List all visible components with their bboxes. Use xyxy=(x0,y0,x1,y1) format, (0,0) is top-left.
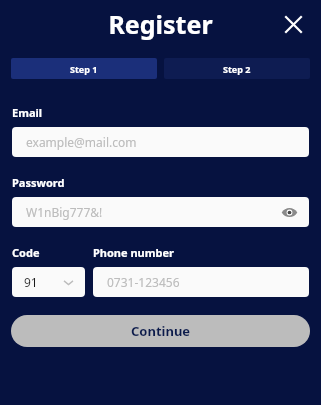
button[interactable]: Step 1 xyxy=(11,58,157,79)
staticText: example@mail.com xyxy=(26,134,137,150)
button[interactable]: Continue xyxy=(11,315,310,347)
staticText: Register xyxy=(108,7,213,41)
staticText: W1nBig777&! xyxy=(26,204,103,220)
staticText: Step 1 xyxy=(70,63,98,75)
button[interactable]: Close xyxy=(277,8,309,40)
staticText: Email xyxy=(12,105,43,120)
button[interactable]: Step 2 xyxy=(164,58,310,79)
staticText: Phone number xyxy=(93,245,174,260)
staticText: Step 2 xyxy=(223,63,251,75)
button[interactable]: 91 xyxy=(12,267,85,297)
staticText: 91 xyxy=(24,274,38,290)
staticText: Code xyxy=(12,245,93,260)
button[interactable]: W1nBig777&! xyxy=(12,197,309,227)
staticText: 0731-123456 xyxy=(107,274,180,290)
button[interactable]: 0731-123456 xyxy=(93,267,309,297)
button[interactable]: example@mail.com xyxy=(12,127,309,157)
staticText: Password xyxy=(12,175,65,190)
staticText: Continue xyxy=(131,322,191,340)
button[interactable]: Show password xyxy=(277,200,301,224)
